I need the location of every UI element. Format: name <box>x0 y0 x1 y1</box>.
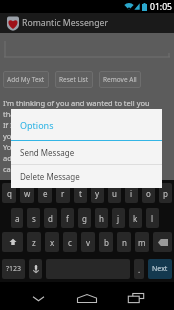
staticText: r <box>61 188 65 199</box>
button[interactable]: Back <box>14 286 62 310</box>
staticText: v <box>86 237 91 248</box>
staticText: z <box>32 237 36 248</box>
staticText: Romantic Messenger <box>22 17 109 29</box>
button[interactable]: p <box>159 183 172 203</box>
staticText: w <box>24 188 31 199</box>
button[interactable]: t <box>74 183 87 203</box>
button[interactable]: ?123 <box>2 259 25 279</box>
button[interactable]: Backspace <box>153 232 172 252</box>
button[interactable]: y <box>91 183 104 203</box>
button[interactable]: a <box>11 208 23 228</box>
staticText: k <box>133 213 138 224</box>
button[interactable]: q <box>2 183 16 203</box>
staticText: h <box>99 213 104 224</box>
staticText: l <box>151 213 154 224</box>
staticText: that you mean the world to me. <box>3 109 115 119</box>
staticText: Delete Message <box>20 171 80 182</box>
button[interactable]: g <box>78 208 91 228</box>
staticText: g <box>82 213 87 224</box>
button[interactable]: Home <box>62 286 112 310</box>
button[interactable]: Next <box>148 259 172 279</box>
staticText: d <box>48 213 53 224</box>
staticText: you would see yourself through my <box>3 131 128 141</box>
button[interactable]: d <box>44 208 57 228</box>
staticText: 01:05 <box>150 1 172 13</box>
button[interactable]: Remove All <box>99 71 141 88</box>
button[interactable]: f <box>61 208 74 228</box>
staticText: b <box>104 237 109 248</box>
staticText: Add My Text <box>7 75 45 84</box>
button[interactable]: c <box>63 232 77 252</box>
staticText: i <box>130 188 133 199</box>
button[interactable]: w <box>20 183 34 203</box>
button[interactable]: m <box>135 232 149 252</box>
staticText: f <box>66 213 69 224</box>
staticText: a <box>15 213 20 224</box>
button[interactable]: z <box>27 232 41 252</box>
button[interactable]: e <box>38 183 52 203</box>
staticText: Options <box>20 119 54 131</box>
button[interactable]: j <box>112 208 125 228</box>
button[interactable]: Add My Text <box>3 71 49 88</box>
button[interactable]: h <box>95 208 108 228</box>
staticText: e <box>43 188 48 199</box>
staticText: q <box>7 188 12 199</box>
staticText: ?123 <box>6 264 22 274</box>
staticText: y <box>95 188 100 199</box>
button[interactable]: b <box>99 232 113 252</box>
button[interactable]: Recents <box>112 286 160 310</box>
staticText: adore you more than words can say <box>3 153 129 163</box>
button[interactable]: l <box>146 208 159 228</box>
staticText: . <box>138 264 141 275</box>
button[interactable]: v <box>81 232 95 252</box>
button[interactable]: u <box>108 183 121 203</box>
button[interactable]: s <box>27 208 40 228</box>
staticText: x <box>50 237 55 248</box>
button[interactable]: r <box>56 183 70 203</box>
staticText: s <box>32 213 36 224</box>
button[interactable]: Shift <box>2 232 23 252</box>
button[interactable]: x <box>45 232 59 252</box>
staticText: cannot stop thinking about you today <box>3 164 136 174</box>
staticText: j <box>117 213 120 224</box>
button[interactable]: o <box>142 183 155 203</box>
button[interactable]: . <box>134 259 144 279</box>
staticText: p <box>163 188 168 199</box>
staticText: I'm thinking of you and wanted to tell y… <box>3 98 150 108</box>
button[interactable]: Reset List <box>55 71 93 88</box>
button[interactable]: n <box>117 232 131 252</box>
staticText: Reset List <box>59 75 89 84</box>
button[interactable]: Send Message <box>11 141 162 164</box>
button[interactable]: i <box>125 183 138 203</box>
staticText: t <box>79 188 82 199</box>
staticText: n <box>122 237 127 248</box>
staticText: Next <box>152 264 168 274</box>
staticText: c <box>68 237 72 248</box>
staticText: m <box>138 237 146 248</box>
staticText: o <box>146 188 151 199</box>
staticText: Send Message <box>20 147 75 158</box>
staticText: Your smile is the sweetest thing I <box>3 142 119 152</box>
button[interactable]: Voice input <box>29 259 42 279</box>
button[interactable]: Delete Message <box>11 165 162 188</box>
button[interactable]: k <box>129 208 142 228</box>
staticText: If I could give you one thing in life, <box>3 120 125 130</box>
staticText: u <box>112 188 117 199</box>
staticText: Remove All <box>103 75 137 84</box>
